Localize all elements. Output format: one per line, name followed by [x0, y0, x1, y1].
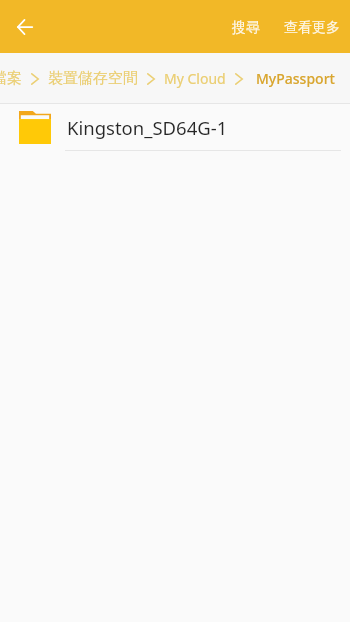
- button[interactable]: 搜尋: [221, 10, 271, 44]
- button[interactable]: Back: [7, 9, 43, 45]
- button[interactable]: 查看更多: [271, 10, 350, 44]
- staticText: 查看更多: [284, 19, 340, 37]
- button[interactable]: 檔案: [0, 53, 31, 104]
- button[interactable]: Kingston_SD64G-1: [0, 104, 350, 151]
- staticText: Kingston_SD64G-1: [67, 115, 228, 140]
- staticText: 檔案: [0, 69, 22, 88]
- button[interactable]: MyPassport: [243, 53, 344, 104]
- staticText: 搜尋: [232, 19, 260, 37]
- staticText: 裝置儲存空間: [48, 69, 138, 88]
- staticText: MyPassport: [256, 69, 335, 88]
- button[interactable]: 裝置儲存空間: [39, 53, 147, 104]
- button[interactable]: My Cloud: [155, 53, 235, 104]
- staticText: My Cloud: [164, 69, 226, 88]
